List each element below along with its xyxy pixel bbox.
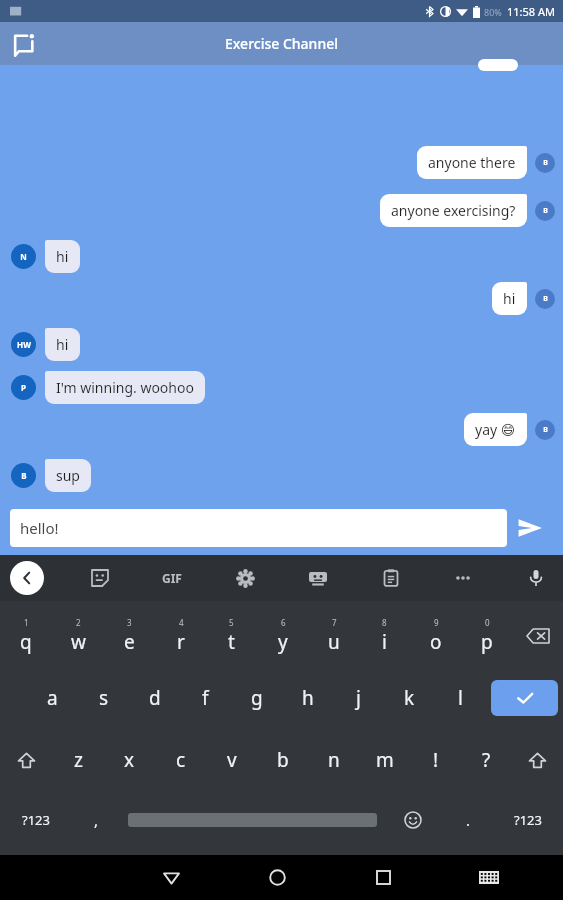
button[interactable]: Recent apps (330, 855, 436, 900)
button[interactable]: ? (461, 729, 512, 791)
button[interactable]: 7 (308, 605, 359, 667)
staticText: B (543, 425, 548, 435)
staticText: b (277, 747, 289, 773)
staticText: B (543, 158, 548, 168)
button[interactable]: yay 😄 (464, 413, 555, 446)
button[interactable]: 1 (0, 605, 52, 667)
button[interactable]: g (231, 667, 282, 729)
staticText: u (328, 629, 340, 655)
staticText: o (430, 629, 442, 655)
button[interactable]: k (384, 667, 435, 729)
staticText: anyone exercising? (391, 201, 516, 220)
staticText: hi (503, 510, 516, 529)
button[interactable]: z (52, 729, 104, 791)
button[interactable]: b (257, 729, 308, 791)
button[interactable]: 8 (359, 605, 410, 667)
staticText: t (228, 629, 235, 655)
button[interactable]: Keyboard (436, 855, 542, 900)
button[interactable]: x (104, 729, 155, 791)
button[interactable]: Back (118, 855, 224, 900)
staticText: HW (17, 339, 31, 350)
button[interactable]: l (435, 667, 486, 729)
button[interactable]: 9 (410, 605, 461, 667)
button[interactable]: 5 (206, 605, 257, 667)
staticText: I'm winning. woohoo (56, 378, 194, 397)
button[interactable]: Emoji (383, 791, 443, 849)
button[interactable]: h (282, 667, 333, 729)
staticText: 3 (127, 617, 132, 628)
button[interactable]: ?123 (493, 791, 563, 849)
button[interactable]: Period (443, 791, 493, 849)
staticText: B (543, 206, 548, 216)
button[interactable]: 2 (52, 605, 104, 667)
staticText: c (176, 747, 186, 773)
staticText: sup (56, 466, 80, 485)
button[interactable]: Shift (0, 729, 52, 791)
button[interactable]: hi (492, 503, 555, 536)
staticText: 11:58 AM (507, 4, 555, 19)
button[interactable]: 0 (461, 605, 512, 667)
staticText: 2 (76, 617, 81, 628)
staticText: 1 (24, 617, 29, 628)
staticText: z (74, 747, 83, 773)
button[interactable]: 3 (104, 605, 155, 667)
button[interactable]: Stickers (83, 561, 117, 595)
button[interactable]: Enter (491, 680, 558, 716)
staticText: v (227, 747, 237, 773)
staticText: GIF (162, 570, 182, 586)
button[interactable]: j (333, 667, 384, 729)
staticText: 8 (382, 617, 387, 628)
button[interactable]: 4 (155, 605, 206, 667)
staticText: 7 (332, 617, 337, 628)
button[interactable]: f (180, 667, 231, 729)
staticText: a (47, 685, 58, 711)
staticText: 0 (485, 617, 490, 628)
button[interactable]: m (359, 729, 410, 791)
staticText: x (124, 747, 135, 773)
button[interactable]: 6 (257, 605, 308, 667)
button[interactable]: hello! (10, 509, 507, 547)
button[interactable]: c (155, 729, 206, 791)
staticText: g (251, 685, 263, 711)
staticText: 6 (281, 617, 286, 628)
button[interactable]: Send (507, 505, 553, 551)
button[interactable]: Comma (71, 791, 122, 849)
staticText: N (20, 251, 27, 262)
button[interactable]: B (11, 459, 91, 492)
staticText: . (466, 810, 471, 830)
button[interactable]: Screen share (301, 561, 335, 595)
staticText: j (356, 685, 361, 711)
button[interactable]: HW (11, 328, 80, 361)
button[interactable]: ?123 (0, 791, 71, 849)
button[interactable]: d (129, 667, 180, 729)
staticText: f (202, 685, 209, 711)
button[interactable]: anyone there (417, 146, 555, 179)
button[interactable]: Shift right (512, 729, 563, 791)
staticText: Exercise Channel (225, 34, 338, 53)
staticText: hi (56, 335, 69, 354)
button[interactable]: hi (492, 282, 555, 315)
button[interactable]: Back (10, 561, 44, 595)
button[interactable]: Clipboard (374, 561, 408, 595)
staticText: d (149, 685, 161, 711)
button[interactable]: v (206, 729, 257, 791)
button[interactable]: anyone exercising? (380, 194, 555, 227)
button[interactable]: a (27, 667, 78, 729)
button[interactable]: Channels (0, 22, 48, 65)
button[interactable]: n (308, 729, 359, 791)
button[interactable]: P (11, 371, 205, 404)
button[interactable]: Backspace (512, 605, 563, 667)
button[interactable]: Settings (228, 561, 262, 595)
button[interactable]: Home (224, 855, 330, 900)
button[interactable]: Voice input (519, 561, 553, 595)
staticText: l (458, 685, 463, 711)
button[interactable]: N (11, 240, 80, 273)
staticText: p (481, 629, 493, 655)
button[interactable]: s (78, 667, 129, 729)
button[interactable]: More options (446, 561, 480, 595)
staticText: 4 (179, 617, 184, 628)
button[interactable]: GIF (155, 561, 189, 595)
button[interactable]: ! (410, 729, 461, 791)
